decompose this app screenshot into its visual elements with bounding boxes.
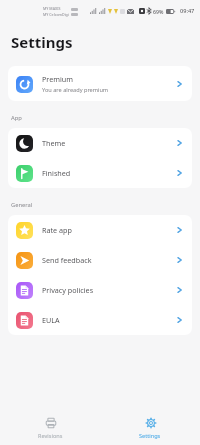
button[interactable]: Revisions — [0, 411, 100, 445]
button[interactable]: Settings — [100, 411, 200, 445]
button[interactable]: Finished — [8, 158, 192, 188]
staticText: MY CelcomDigi — [43, 12, 69, 17]
staticText: 69% — [153, 8, 164, 15]
button[interactable]: EULA — [8, 305, 192, 335]
staticText: Revisions — [38, 432, 63, 440]
staticText: General — [11, 201, 33, 209]
other: Revisions — [45, 417, 57, 429]
staticText: App — [11, 114, 22, 122]
other: Settings — [145, 417, 157, 429]
button[interactable]: Send feedback — [8, 245, 192, 275]
button[interactable]: Theme — [8, 128, 192, 158]
staticText: Settings — [11, 32, 73, 52]
staticText: Settings — [139, 432, 161, 440]
staticText: Send feedback — [42, 255, 92, 265]
button[interactable]: Rate app — [8, 215, 192, 245]
staticText: Theme — [42, 138, 66, 148]
button[interactable]: Privacy policies — [8, 275, 192, 305]
staticText: You are already premium — [42, 86, 109, 94]
staticText: Finished — [42, 168, 71, 178]
staticText: EULA — [42, 315, 60, 325]
staticText: Rate app — [42, 225, 72, 235]
staticText: 09:47 — [180, 7, 195, 15]
staticText: Premium — [42, 74, 73, 84]
button[interactable]: Premium — [8, 66, 192, 101]
staticText: Privacy policies — [42, 285, 94, 295]
staticText: MY MAXIS — [43, 6, 61, 11]
